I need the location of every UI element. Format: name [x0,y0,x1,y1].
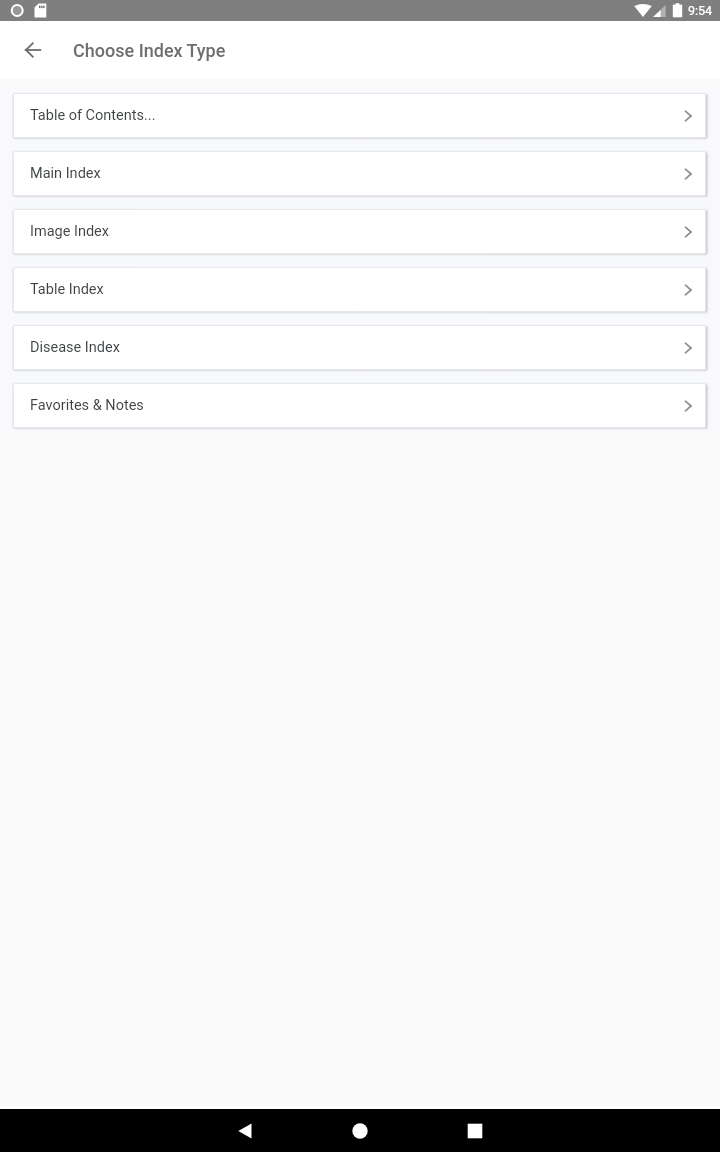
staticText: Main Index [30,165,678,182]
button[interactable]: Back [217,1109,273,1152]
button[interactable]: Recent apps [447,1109,503,1152]
staticText: Table Index [30,281,678,298]
staticText: Disease Index [30,339,678,356]
staticText: Image Index [30,223,678,240]
button[interactable]: Main Index [13,151,706,196]
button[interactable]: Image Index [13,209,706,254]
staticText: Table of Contents... [30,107,678,124]
button[interactable]: Navigate up [9,26,57,74]
button[interactable]: Table Index [13,267,706,312]
button[interactable]: Favorites & Notes [13,383,706,428]
staticText: Favorites & Notes [30,397,678,414]
staticText: Choose Index Type [73,40,226,61]
staticText: 9:54 [688,3,713,18]
button[interactable]: Home [332,1109,388,1152]
button[interactable]: Table of Contents... [13,93,706,138]
button[interactable]: Disease Index [13,325,706,370]
